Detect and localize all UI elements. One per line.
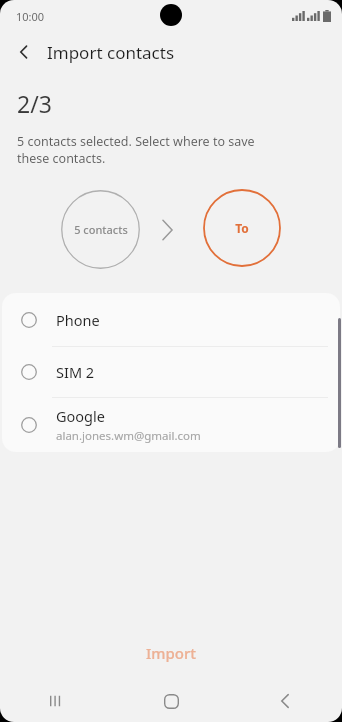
staticText: 5 contacts [74,222,128,237]
button[interactable]: SIM 2 [2,347,340,397]
staticText: Phone [56,310,100,330]
staticText: Import contacts [47,41,175,64]
button[interactable]: Google [2,398,340,452]
staticText: 10:00 [16,9,45,24]
button[interactable]: Back [6,34,42,70]
staticText: Google [56,406,105,426]
staticText: 5 contacts selected. Select where to sav… [17,133,255,167]
staticText: To [235,220,249,236]
button[interactable]: Recent apps [0,680,114,722]
button[interactable]: Home [114,680,228,722]
staticText: alan.jones.wm@gmail.com [56,428,201,444]
staticText: Import [146,643,197,663]
staticText: SIM 2 [56,362,95,382]
staticText: 2/3 [17,88,52,119]
button[interactable]: Back [228,680,342,722]
button[interactable]: Phone [2,293,340,346]
button[interactable]: Import [0,626,342,680]
